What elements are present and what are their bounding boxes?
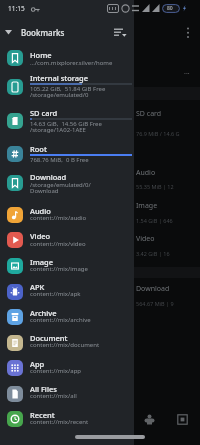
staticText: Download (30, 172, 67, 182)
button[interactable] (0, 71, 134, 98)
staticText: Video (30, 231, 51, 241)
staticText: Internal storage (30, 73, 89, 83)
staticText: ... (184, 67, 190, 77)
staticText: content://mix/all (30, 392, 77, 400)
staticText: 3.42 GiB | 16 (136, 250, 170, 257)
button[interactable] (0, 252, 134, 277)
staticText: Video (136, 234, 155, 244)
staticText: App (30, 359, 45, 369)
staticText: 76.9 MiB / 14.6 G (136, 130, 180, 137)
staticText: 564.67 MiB | 9 (136, 300, 174, 307)
button[interactable] (0, 303, 134, 328)
staticText: content://mix/document (30, 341, 100, 349)
staticText: content://mix/app (30, 367, 82, 375)
staticText: Audio (30, 206, 51, 216)
button[interactable] (0, 168, 134, 196)
staticText: Download (136, 284, 170, 294)
staticText: Audio (136, 168, 156, 178)
button[interactable] (0, 201, 134, 226)
staticText: content://mix/video (30, 240, 86, 248)
staticText: 105.22 GiB, 51.84 GiB Free (30, 85, 106, 93)
staticText: content://mix/archive (30, 316, 91, 324)
staticText: SD card (136, 109, 162, 119)
button[interactable] (144, 414, 155, 425)
button[interactable] (0, 105, 134, 133)
staticText: .../com.mixplorer.silver/home (30, 59, 113, 67)
button[interactable] (0, 404, 134, 429)
staticText: 80 (167, 5, 173, 12)
staticText: /storage/1A02-1AEE (30, 126, 86, 134)
staticText: SD card (30, 108, 58, 118)
staticText: content://mix/audio (30, 214, 87, 222)
staticText: 11:15 (8, 4, 25, 13)
staticText: Download (30, 187, 59, 195)
staticText: Image (30, 257, 54, 267)
staticText: Recent (30, 410, 55, 420)
button[interactable] (0, 277, 134, 302)
staticText: 14.63 GiB, 14.56 GiB Free (30, 120, 102, 128)
staticText: 1.54 GiB | 646 (136, 217, 173, 224)
staticText: All Files (30, 384, 57, 394)
staticText: Home (30, 50, 52, 60)
staticText: 768.76 MiB, 0 B Free (30, 156, 89, 164)
staticText: Document (30, 333, 68, 343)
button[interactable] (114, 28, 127, 38)
button[interactable] (0, 46, 134, 70)
button[interactable] (0, 226, 134, 251)
staticText: 55.35 MiB | 12 (136, 183, 174, 190)
staticText: Image (136, 201, 158, 211)
staticText: Root (30, 144, 47, 154)
staticText: APK (30, 282, 45, 292)
button[interactable] (177, 414, 188, 425)
staticText: /storage/emulated/0/ (30, 181, 91, 189)
button[interactable] (0, 140, 134, 166)
button[interactable] (0, 328, 134, 353)
staticText: /storage/emulated/0 (30, 91, 89, 99)
staticText: Archive (30, 308, 57, 318)
button[interactable] (0, 22, 134, 44)
staticText: content://mix/recent (30, 418, 89, 426)
button[interactable] (0, 354, 134, 379)
staticText: Bookmarks (21, 27, 65, 38)
button[interactable] (0, 379, 134, 404)
staticText: content://mix/apk (30, 290, 81, 298)
button[interactable] (185, 27, 191, 39)
staticText: content://mix/image (30, 265, 88, 273)
